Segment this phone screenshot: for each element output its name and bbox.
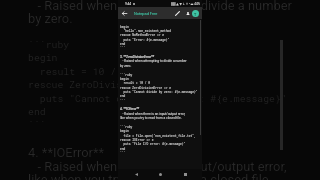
staticText: 9:44	[125, 2, 132, 6]
staticText: rescue NoMethodError => e	[120, 33, 165, 37]
button[interactable]: Edit	[172, 8, 183, 19]
staticText: ```	[120, 99, 126, 103]
staticText: rescue ZeroDivisionError => e	[120, 86, 172, 90]
staticText: ```	[120, 46, 126, 50]
staticText: ```ruby	[28, 38, 70, 51]
staticText: 4. **IOError**	[120, 107, 140, 111]
staticText: by zero.	[28, 11, 73, 26]
staticText: rescue IOError => e	[120, 138, 154, 142]
staticText: - Raised when there is an input/output e…	[120, 112, 186, 116]
staticText: like when you try to read from a closed …	[28, 172, 272, 180]
staticText: T	[194, 12, 197, 16]
staticText: - Raised when there is an input/output e…	[28, 159, 287, 174]
staticText: end	[120, 42, 126, 46]
staticText: begin	[120, 129, 129, 133]
staticText: begin	[120, 77, 129, 81]
staticText: result = 10 / 0	[120, 81, 150, 85]
button[interactable]: Back	[119, 8, 130, 19]
staticText: puts "Cannot divide by zero: #{e.message…	[28, 92, 287, 105]
staticText: begin	[28, 51, 58, 64]
staticText: end	[28, 105, 46, 118]
staticText: end	[120, 147, 126, 151]
staticText: 4. **IOError**	[28, 145, 105, 160]
button[interactable]: Back	[129, 169, 143, 180]
staticText: end	[120, 94, 126, 98]
staticText: ▒▒ ▲ ▼ ↓ ↑ • ▬ 44%	[171, 2, 200, 6]
staticText: by zero.	[120, 64, 132, 68]
staticText: 3. **ZeroDivisionError**	[120, 55, 155, 59]
staticText: file = File.open("non_existent_file.txt"…	[120, 134, 204, 138]
button[interactable]: Recents	[178, 169, 192, 180]
button[interactable]: Account details	[182, 8, 193, 19]
staticText: rescue ZeroDivisionError => e	[28, 78, 199, 91]
staticText: begin	[120, 25, 129, 29]
staticText: ```	[120, 151, 126, 155]
staticText: result = 10 / 0	[28, 65, 128, 78]
button[interactable]: Profile	[192, 10, 199, 17]
staticText: - Raised when attempting to divide a num…	[120, 59, 187, 63]
staticText: like when you try to read from a closed …	[120, 116, 182, 120]
button[interactable]: Home	[153, 169, 167, 180]
staticText: ```ruby	[120, 73, 133, 77]
staticText: Notepad Free	[134, 11, 158, 16]
staticText: puts "Error: #{e.message}"	[120, 38, 170, 42]
staticText: "hello".non_existent_method	[120, 29, 172, 33]
staticText: ```ruby	[120, 125, 133, 129]
staticText: - Raised when attempting to divide a num…	[28, 0, 292, 13]
staticText: puts "File I/O error: #{e.message}"	[120, 142, 186, 146]
staticText: puts "Cannot divide by zero: #{e.message…	[120, 90, 198, 94]
